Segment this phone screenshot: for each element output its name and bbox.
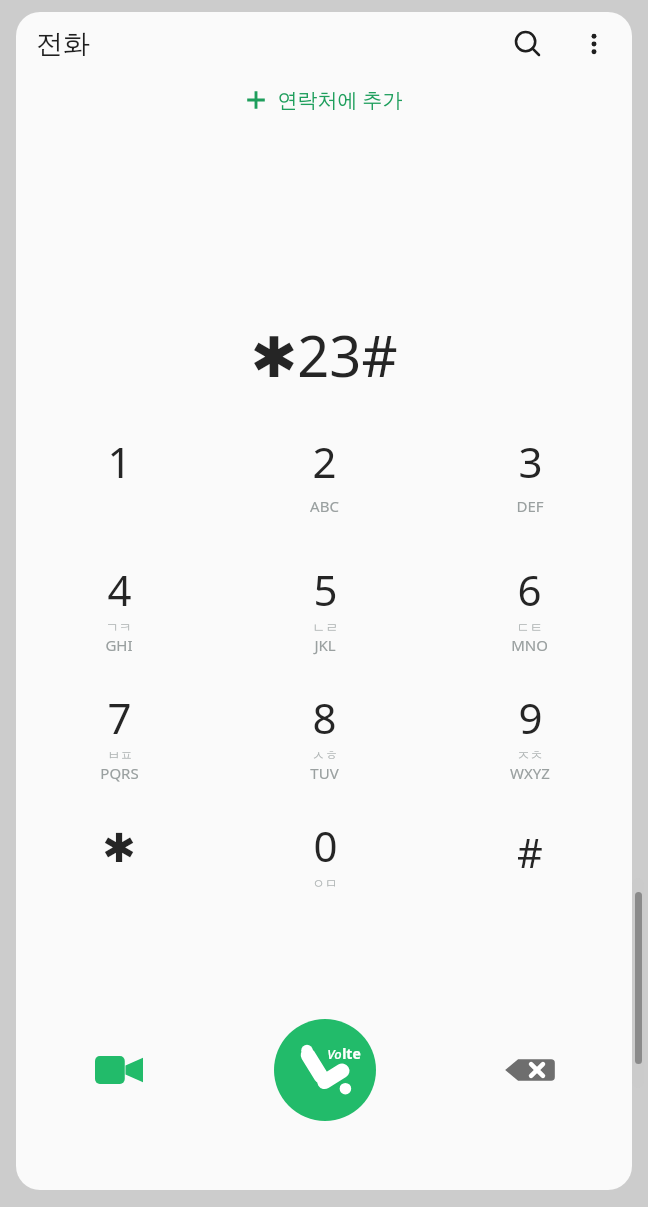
button[interactable]: 3 bbox=[427, 425, 632, 553]
staticText: MNO bbox=[511, 635, 548, 655]
staticText: TUV bbox=[310, 763, 339, 783]
staticText: 2 bbox=[312, 433, 337, 490]
button[interactable]: 7 bbox=[16, 681, 222, 809]
button[interactable]: 4 bbox=[16, 553, 222, 681]
button[interactable]: Search bbox=[502, 18, 554, 70]
staticText: JKL bbox=[314, 635, 336, 655]
staticText: ABC bbox=[310, 496, 339, 516]
staticText: 1 bbox=[107, 433, 132, 490]
button[interactable]: 2 bbox=[222, 425, 427, 553]
button[interactable]: More options bbox=[570, 20, 618, 68]
staticText: 연락처에 추가 bbox=[277, 86, 403, 113]
staticText: 전화 bbox=[36, 27, 90, 61]
staticText: ✱23# bbox=[250, 317, 398, 393]
staticText: 0 bbox=[313, 817, 338, 874]
staticText: Vo bbox=[327, 1045, 342, 1063]
button[interactable]: 6 bbox=[427, 553, 632, 681]
button[interactable]: ✱ bbox=[16, 809, 222, 937]
button[interactable]: 연락처에 추가 bbox=[231, 76, 417, 123]
staticText: 4 bbox=[107, 561, 132, 618]
button[interactable]: 0 bbox=[222, 809, 427, 937]
staticText: ㅅㅎ bbox=[312, 747, 338, 763]
staticText: WXYZ bbox=[510, 763, 550, 783]
button[interactable]: Backspace bbox=[427, 1010, 632, 1130]
staticText: ㅈㅊ bbox=[517, 747, 543, 763]
button[interactable]: 5 bbox=[222, 553, 427, 681]
staticText: GHI bbox=[105, 635, 133, 655]
staticText: ✱ bbox=[102, 825, 136, 872]
staticText: 6 bbox=[517, 561, 542, 618]
staticText: ㄷㅌ bbox=[517, 619, 543, 635]
staticText: 7 bbox=[107, 689, 132, 746]
staticText: lte bbox=[342, 1044, 361, 1063]
button[interactable]: 9 bbox=[427, 681, 632, 809]
staticText: PQRS bbox=[100, 763, 139, 783]
staticText: 5 bbox=[313, 561, 338, 618]
staticText: DEF bbox=[516, 496, 544, 516]
staticText: ㅇㅁ bbox=[312, 875, 338, 891]
button[interactable]: Video call bbox=[16, 1010, 222, 1130]
button[interactable]: 8 bbox=[222, 681, 427, 809]
button[interactable]: # bbox=[427, 809, 632, 937]
staticText: ㄴㄹ bbox=[312, 619, 338, 635]
staticText: 8 bbox=[312, 689, 337, 746]
button[interactable]: 1 bbox=[16, 425, 222, 553]
staticText: 3 bbox=[518, 433, 543, 490]
staticText: ㅂㅍ bbox=[107, 747, 133, 763]
staticText: ㄱㅋ bbox=[106, 619, 132, 635]
staticText: # bbox=[517, 825, 543, 879]
staticText: 9 bbox=[518, 689, 543, 746]
button[interactable]: Call bbox=[274, 1019, 376, 1121]
